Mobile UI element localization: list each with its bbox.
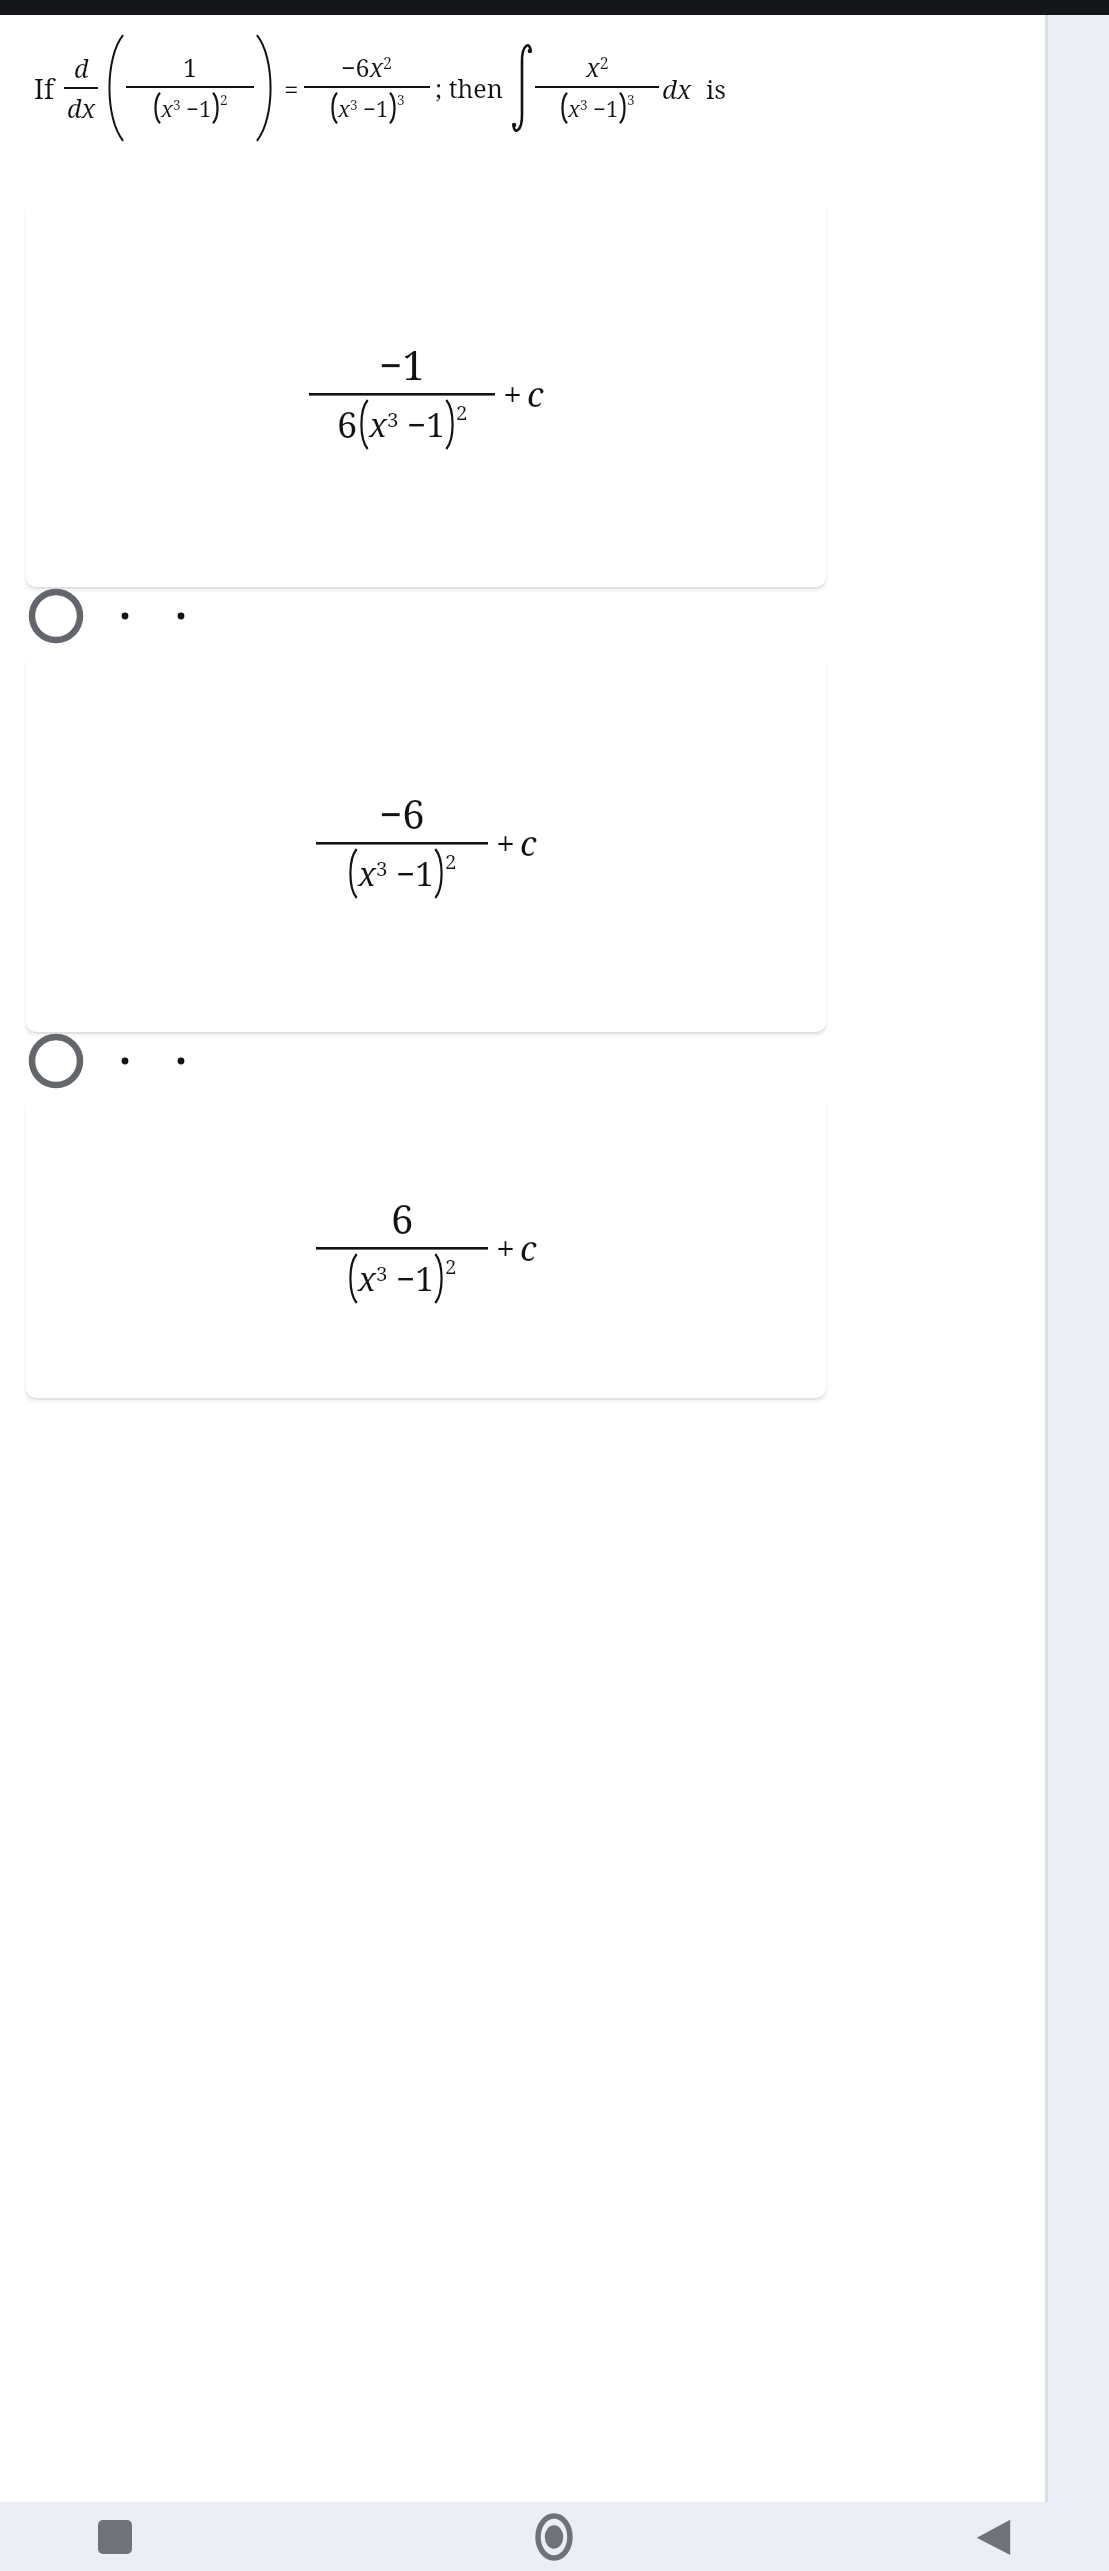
staticText: + xyxy=(503,371,523,417)
staticText: x3 −1 xyxy=(161,93,212,123)
staticText: If xyxy=(34,70,54,107)
staticText: c xyxy=(520,1225,537,1271)
button[interactable]: 6 xyxy=(26,1098,826,1398)
staticText: 2 xyxy=(220,90,228,109)
button[interactable]: Select option xyxy=(0,1032,1045,1090)
staticText: d xyxy=(74,51,89,85)
staticText: c xyxy=(527,371,544,417)
staticText: is xyxy=(706,71,727,106)
staticText: x3 −1 xyxy=(568,93,619,123)
staticText: x3 −1 xyxy=(358,1256,434,1301)
staticText: c xyxy=(520,820,537,866)
button[interactable]: Recent apps xyxy=(60,2502,170,2571)
staticText: x3 −1 xyxy=(369,402,445,447)
staticText: x3 −1 xyxy=(358,851,434,896)
staticText: ; then xyxy=(435,71,503,105)
staticText: 2 xyxy=(456,398,468,426)
staticText: −6x2 xyxy=(341,50,393,84)
staticText: 3 xyxy=(627,90,635,109)
staticText: 2 xyxy=(445,1252,457,1280)
staticText: + xyxy=(496,1225,516,1271)
staticText: x2 xyxy=(586,50,609,84)
staticText: dx xyxy=(67,91,96,125)
staticText: −1 xyxy=(379,337,425,391)
staticText: x3 −1 xyxy=(338,93,389,123)
staticText: = xyxy=(284,71,299,106)
staticText: 6 xyxy=(391,1191,414,1245)
staticText: + xyxy=(496,820,516,866)
staticText: dx xyxy=(662,71,692,106)
button[interactable]: Select option xyxy=(0,587,1045,645)
button[interactable]: −1 xyxy=(26,201,826,587)
staticText: 3 xyxy=(397,90,405,109)
staticText: 6 xyxy=(337,400,358,449)
staticText: 2 xyxy=(445,847,457,875)
other: Select option xyxy=(27,587,85,645)
other: Select option xyxy=(27,1032,85,1090)
button[interactable]: −6 xyxy=(26,654,826,1032)
button[interactable]: Home xyxy=(499,2502,609,2571)
button[interactable]: Back xyxy=(939,2502,1049,2571)
staticText: −6 xyxy=(379,786,425,840)
staticText: 1 xyxy=(183,50,197,84)
